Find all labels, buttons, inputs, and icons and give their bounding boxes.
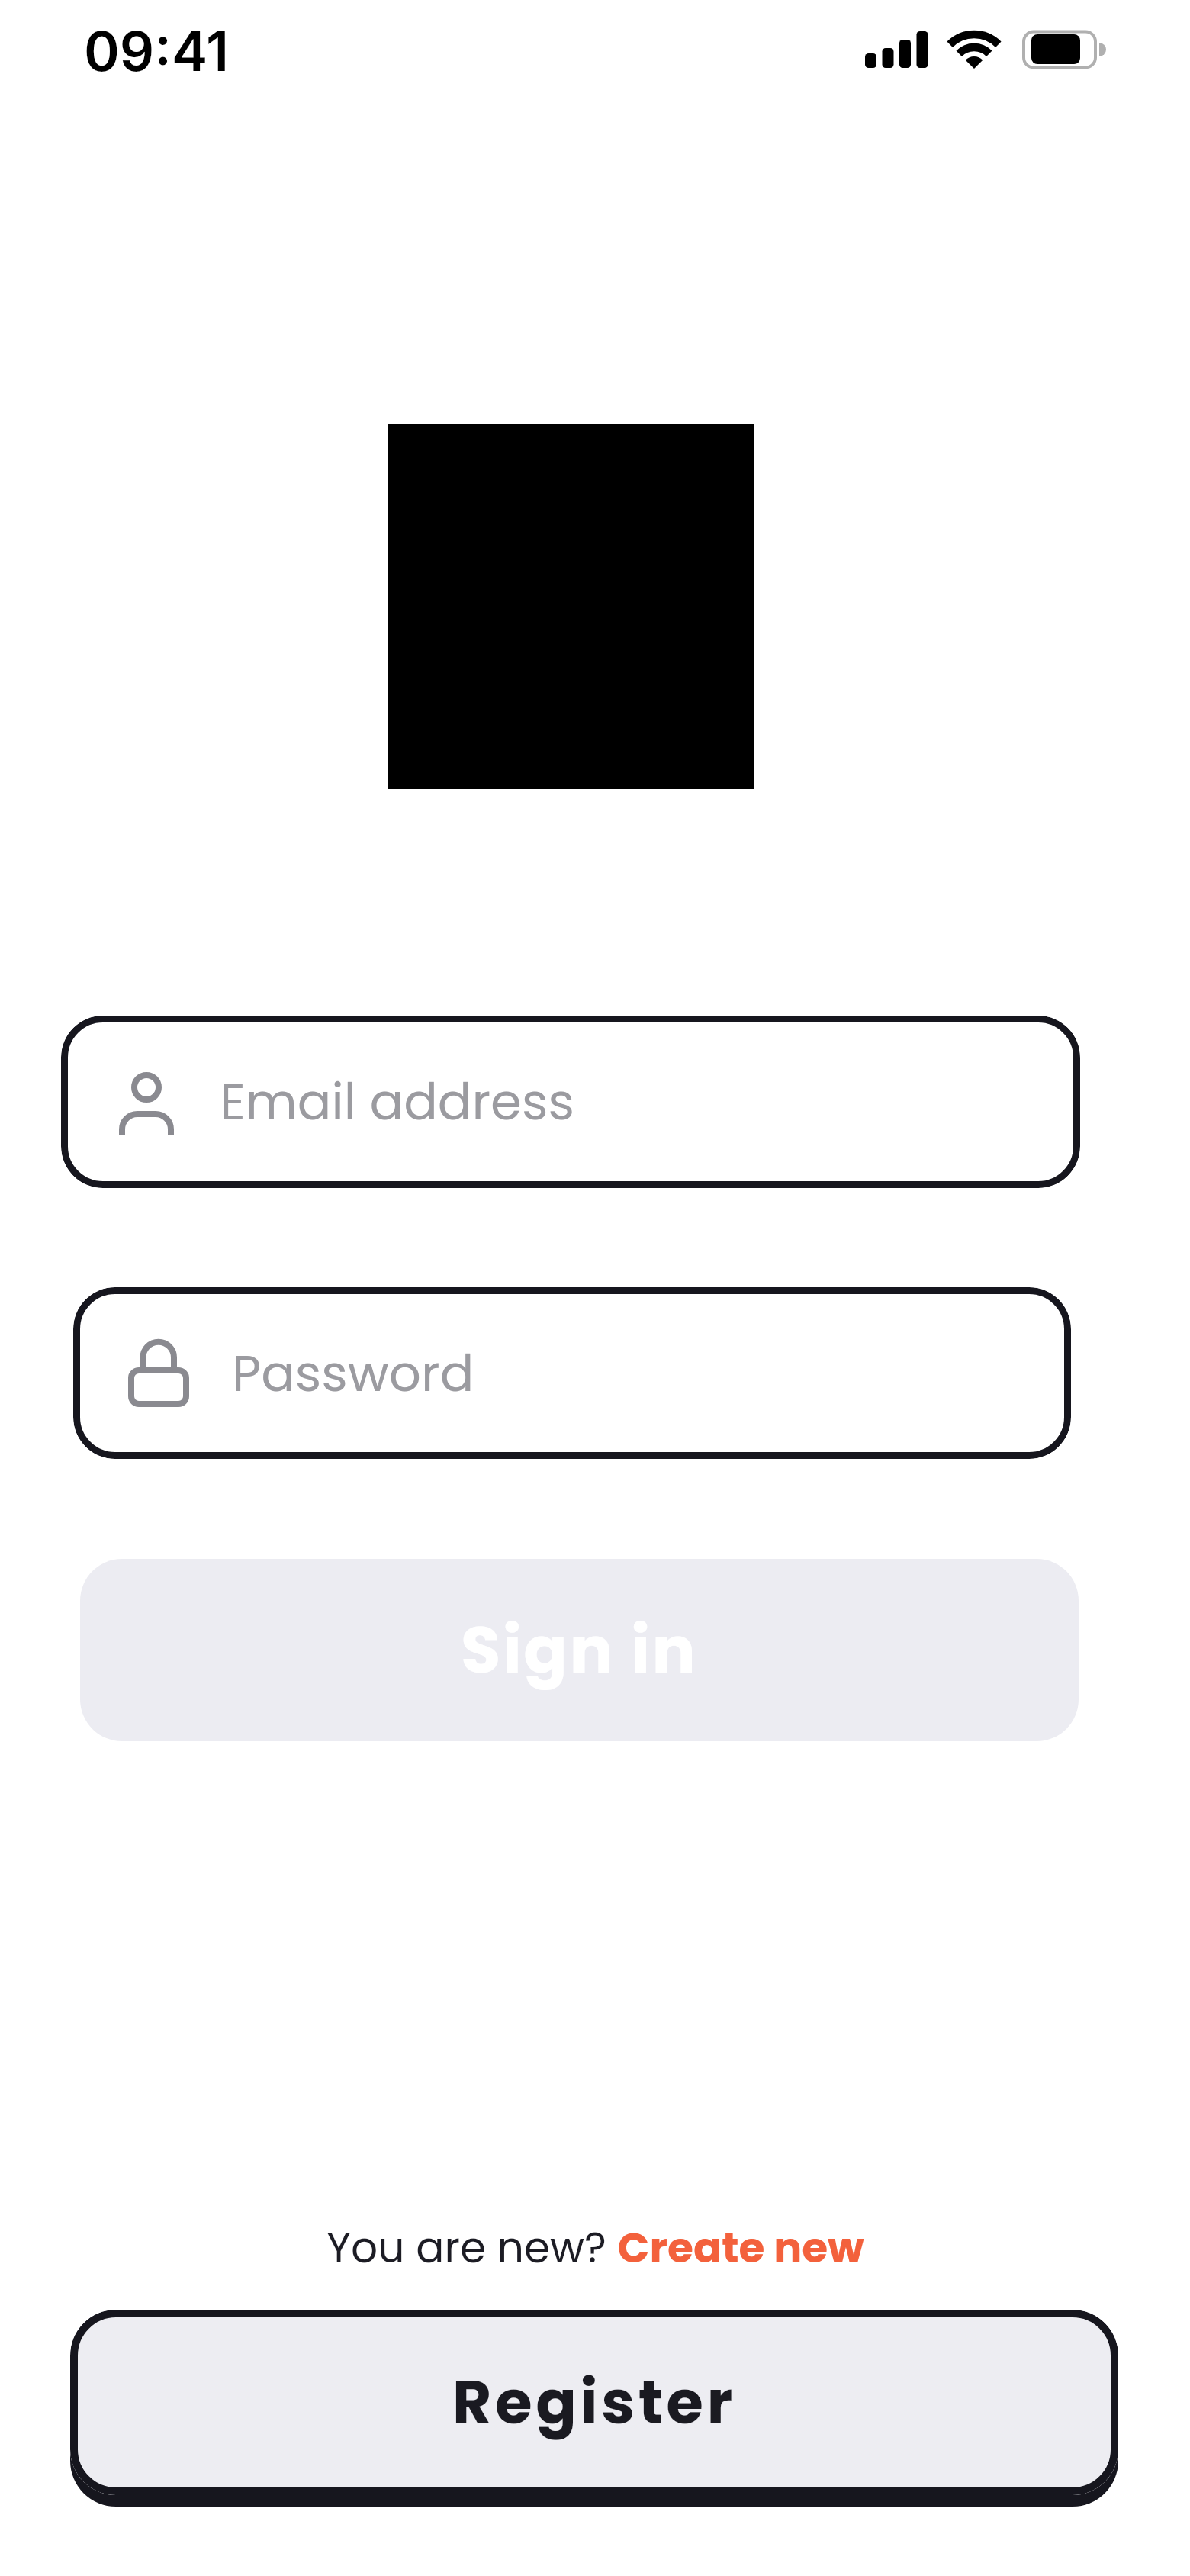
staticText: Sign in <box>461 1605 698 1695</box>
button[interactable]: Password <box>73 1287 1071 1459</box>
staticText: Password <box>232 1338 474 1409</box>
button[interactable]: Sign in <box>80 1559 1079 1741</box>
button[interactable]: Email address <box>61 1016 1080 1188</box>
staticText: You are new? Create new <box>326 2218 864 2277</box>
staticText: Register <box>452 2360 736 2445</box>
staticText: Email address <box>220 1067 574 1137</box>
button[interactable]: Register <box>70 2310 1118 2495</box>
staticText: 09:41 <box>84 18 229 84</box>
button[interactable]: You are new? Create new <box>0 2218 1190 2277</box>
